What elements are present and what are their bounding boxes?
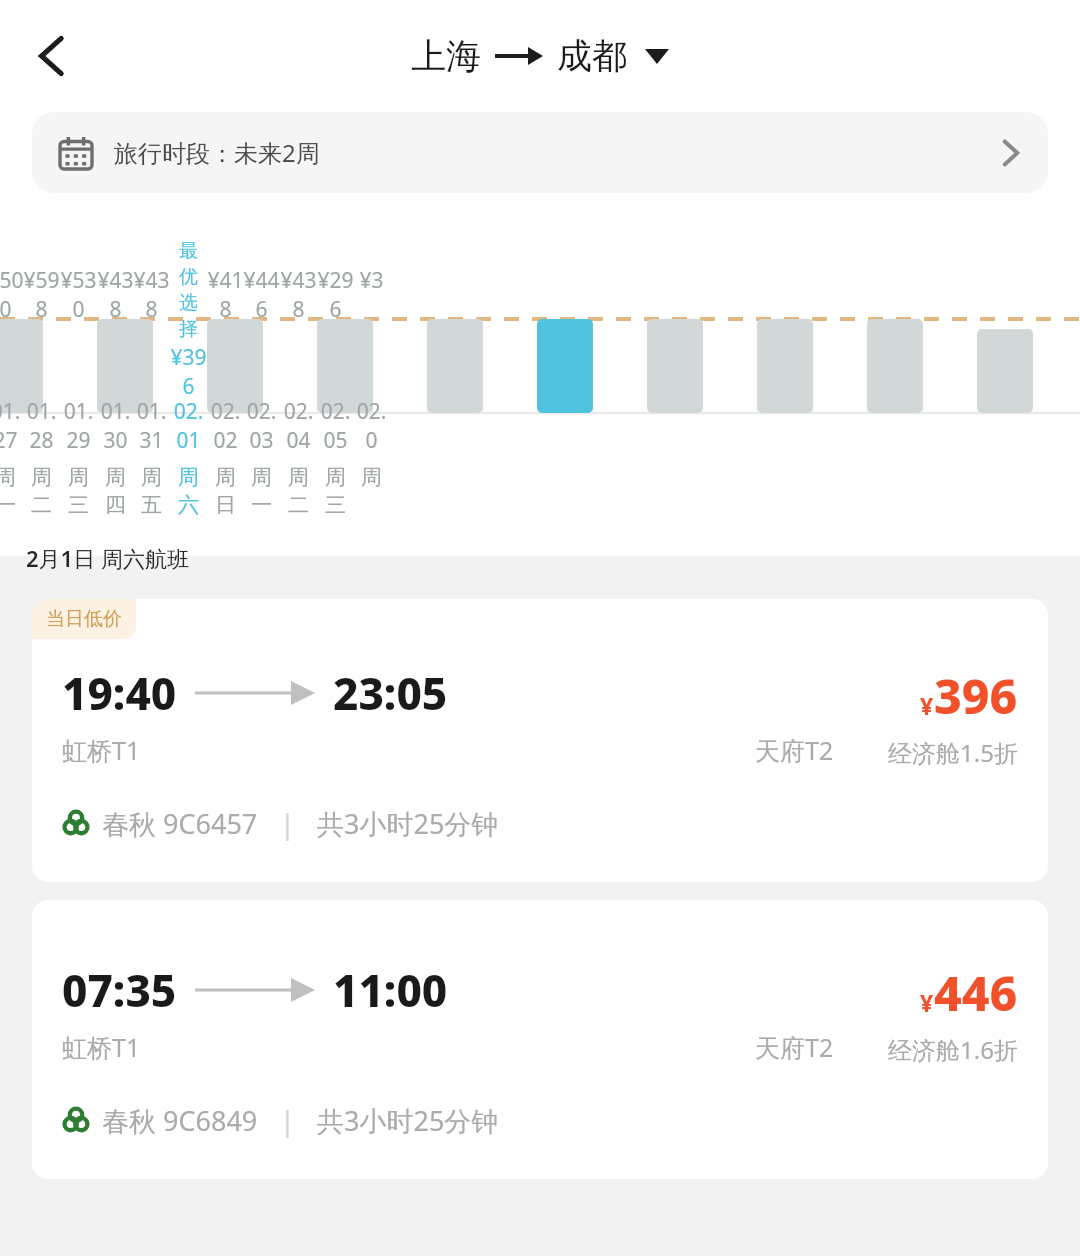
staticText: ¥ bbox=[920, 987, 934, 1018]
button[interactable]: 07:35 bbox=[32, 900, 1048, 1179]
button[interactable]: 旅行时段：未来2周 bbox=[32, 112, 1048, 193]
staticText: ¥500 bbox=[0, 266, 24, 324]
staticText: 虹桥T1 bbox=[62, 1030, 141, 1064]
staticText: ¥396 bbox=[170, 343, 207, 401]
button[interactable]: 上海 bbox=[411, 34, 669, 78]
staticText: ¥530 bbox=[60, 266, 97, 324]
staticText: 02.02 bbox=[207, 397, 244, 455]
staticText: 上海 bbox=[411, 34, 481, 78]
staticText: 周 bbox=[361, 464, 382, 490]
staticText: 当日低价 bbox=[46, 607, 122, 631]
button[interactable]: 01.29 bbox=[60, 397, 97, 518]
staticText: 396 bbox=[934, 663, 1018, 728]
staticText: 周六 bbox=[170, 464, 207, 518]
button[interactable]: ¥418 bbox=[207, 239, 244, 324]
staticText: 春秋 9C6457 bbox=[102, 805, 258, 842]
staticText: 周三 bbox=[317, 464, 354, 518]
staticText: 周四 bbox=[97, 464, 134, 518]
button[interactable]: 01.28 bbox=[23, 397, 60, 518]
button[interactable]: ¥3 bbox=[353, 239, 390, 295]
staticText: 周三 bbox=[60, 464, 97, 518]
button[interactable]: ¥438 bbox=[280, 239, 317, 324]
button[interactable]: ¥598 bbox=[23, 239, 60, 324]
button[interactable]: ¥438 bbox=[133, 239, 170, 324]
staticText: 最优选择 bbox=[170, 239, 207, 341]
button[interactable]: 01.27 bbox=[0, 397, 24, 518]
staticText: 01.31 bbox=[133, 397, 170, 455]
staticText: 23:05 bbox=[333, 663, 448, 723]
staticText: 01.29 bbox=[60, 397, 97, 455]
staticText: 19:40 bbox=[62, 663, 177, 723]
staticText: 11:00 bbox=[333, 960, 448, 1020]
button[interactable]: 最优选择 bbox=[170, 239, 207, 401]
button[interactable]: 02.03 bbox=[243, 397, 280, 518]
staticText: 周日 bbox=[207, 464, 244, 518]
staticText: ¥3 bbox=[359, 266, 384, 295]
button[interactable]: 02.01 bbox=[170, 397, 207, 518]
staticText: ¥446 bbox=[243, 266, 280, 324]
button[interactable]: 01.31 bbox=[133, 397, 170, 518]
button[interactable]: 01.30 bbox=[97, 397, 134, 518]
button[interactable]: 当日低价 bbox=[32, 599, 1048, 882]
staticText: 周五 bbox=[133, 464, 170, 518]
staticText: 02.04 bbox=[280, 397, 317, 455]
staticText: 01.28 bbox=[23, 397, 60, 455]
staticText: 2月1日 周六航班 bbox=[26, 543, 189, 573]
staticText: 446 bbox=[934, 960, 1018, 1025]
staticText: 成都 bbox=[557, 34, 627, 78]
staticText: 07:35 bbox=[62, 960, 177, 1020]
button[interactable]: 02.0 bbox=[353, 397, 390, 490]
staticText: | bbox=[280, 805, 295, 842]
staticText: 02.05 bbox=[317, 397, 354, 455]
staticText: ¥438 bbox=[280, 266, 317, 324]
button[interactable]: 02.05 bbox=[317, 397, 354, 518]
staticText: ¥ bbox=[920, 690, 934, 721]
staticText: ¥438 bbox=[97, 266, 134, 324]
staticText: ¥418 bbox=[207, 266, 244, 324]
staticText: 天府T2 bbox=[755, 733, 834, 767]
staticText: 02.01 bbox=[170, 397, 207, 455]
staticText: 周二 bbox=[280, 464, 317, 518]
staticText: 经济舱1.6折 bbox=[888, 1033, 1018, 1066]
staticText: | bbox=[280, 1102, 295, 1139]
button[interactable]: Back bbox=[12, 16, 92, 96]
staticText: 02.03 bbox=[243, 397, 280, 455]
staticText: 经济舱1.5折 bbox=[888, 736, 1018, 769]
staticText: 01.30 bbox=[97, 397, 134, 455]
button[interactable]: ¥438 bbox=[97, 239, 134, 324]
button[interactable]: ¥446 bbox=[243, 239, 280, 324]
button[interactable]: 02.02 bbox=[207, 397, 244, 518]
button[interactable]: ¥530 bbox=[60, 239, 97, 324]
staticText: ¥598 bbox=[23, 266, 60, 324]
staticText: 旅行时段：未来2周 bbox=[114, 136, 320, 169]
staticText: 周一 bbox=[243, 464, 280, 518]
button[interactable]: 02.04 bbox=[280, 397, 317, 518]
staticText: 春秋 9C6849 bbox=[102, 1102, 258, 1139]
staticText: ¥438 bbox=[133, 266, 170, 324]
staticText: 共3小时25分钟 bbox=[317, 1102, 499, 1139]
staticText: 01.27 bbox=[0, 397, 24, 455]
staticText: 02.0 bbox=[353, 397, 390, 455]
staticText: 周一 bbox=[0, 464, 24, 518]
staticText: 共3小时25分钟 bbox=[317, 805, 499, 842]
staticText: 周二 bbox=[23, 464, 60, 518]
staticText: 虹桥T1 bbox=[62, 733, 141, 767]
staticText: 天府T2 bbox=[755, 1030, 834, 1064]
button[interactable]: ¥296 bbox=[317, 239, 354, 324]
staticText: ¥296 bbox=[317, 266, 354, 324]
button[interactable]: ¥500 bbox=[0, 239, 24, 324]
